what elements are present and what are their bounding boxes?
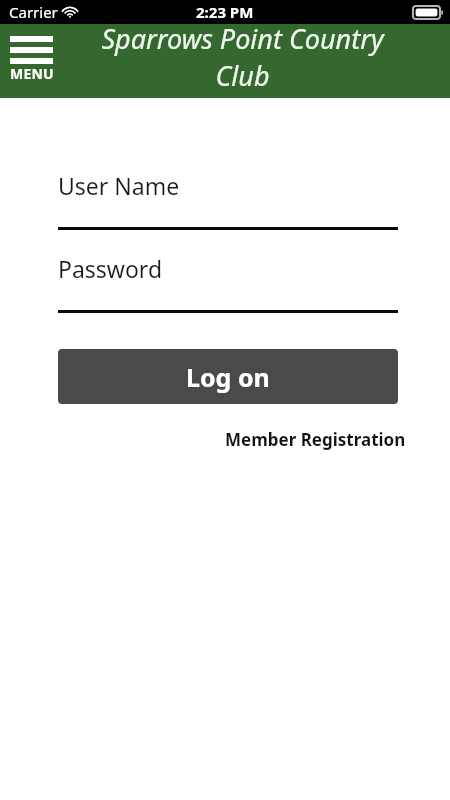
button[interactable]: Member Registration xyxy=(225,428,406,451)
staticText: MENU xyxy=(10,64,54,83)
staticText: Sparrows Point Country Club xyxy=(94,20,391,94)
button[interactable]: Log on xyxy=(58,349,398,404)
staticText: Member Registration xyxy=(225,428,406,451)
staticText: Log on xyxy=(186,360,270,394)
staticText: 2:23 PM xyxy=(196,2,254,22)
staticText: User Name xyxy=(58,170,180,201)
staticText: Carrier xyxy=(9,2,58,22)
staticText: Password xyxy=(58,253,163,284)
button[interactable]: Menu xyxy=(10,36,54,83)
